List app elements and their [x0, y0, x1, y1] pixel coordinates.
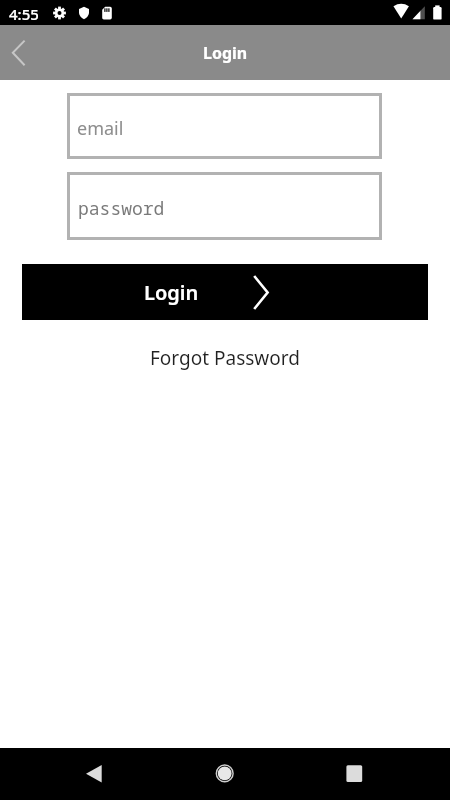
staticText: password — [78, 196, 165, 221]
staticText: Login — [203, 42, 248, 64]
button[interactable] — [201, 750, 249, 798]
button[interactable]: email — [67, 93, 382, 159]
button[interactable]: Login — [22, 264, 428, 320]
button[interactable] — [0, 25, 37, 80]
button[interactable]: Forgot Password — [150, 345, 300, 371]
staticText: Login — [144, 279, 199, 306]
button[interactable]: password — [67, 172, 382, 240]
button[interactable] — [70, 750, 118, 798]
button[interactable] — [330, 750, 378, 798]
staticText: 4:55 — [9, 4, 39, 24]
staticText: email — [77, 116, 124, 141]
